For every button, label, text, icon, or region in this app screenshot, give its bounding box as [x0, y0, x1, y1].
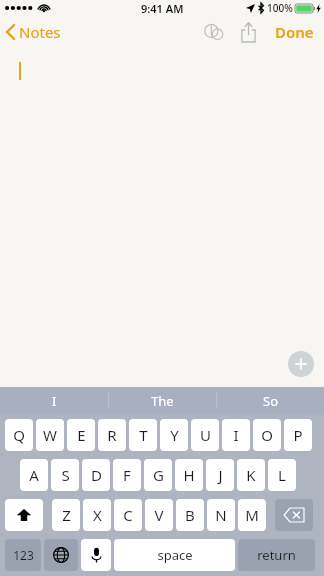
- button[interactable]: Shift: [5, 499, 43, 531]
- staticText: B: [185, 505, 195, 525]
- staticText: D: [91, 465, 102, 485]
- staticText: 123: [13, 547, 34, 563]
- button[interactable]: Share: [231, 16, 265, 48]
- button[interactable]: K: [237, 459, 265, 491]
- button[interactable]: So: [217, 387, 324, 414]
- button[interactable]: Notes: [0, 18, 69, 46]
- button[interactable]: M: [238, 499, 266, 531]
- button[interactable]: 123: [5, 539, 41, 571]
- button[interactable]: H: [175, 459, 203, 491]
- staticText: V: [154, 505, 164, 525]
- button[interactable]: J: [206, 459, 234, 491]
- button[interactable]: R: [98, 419, 126, 451]
- staticText: K: [246, 465, 256, 485]
- button[interactable]: E: [67, 419, 95, 451]
- button[interactable]: X: [83, 499, 111, 531]
- button[interactable]: Add: [288, 351, 314, 377]
- button[interactable]: B: [176, 499, 204, 531]
- button[interactable]: L: [268, 459, 296, 491]
- staticText: Q: [13, 425, 25, 445]
- staticText: 9:41 AM: [141, 1, 184, 16]
- staticText: A: [29, 465, 39, 485]
- staticText: M: [245, 505, 259, 525]
- button[interactable]: V: [145, 499, 173, 531]
- button[interactable]: W: [36, 419, 64, 451]
- button[interactable]: G: [144, 459, 172, 491]
- button[interactable]: S: [51, 459, 79, 491]
- staticText: O: [261, 425, 273, 445]
- button[interactable]: Done: [265, 16, 324, 48]
- staticText: Z: [62, 505, 71, 525]
- staticText: F: [123, 465, 131, 485]
- staticText: L: [278, 465, 286, 485]
- staticText: Notes: [19, 22, 61, 42]
- button[interactable]: Dictate: [81, 539, 111, 571]
- button[interactable]: U: [191, 419, 219, 451]
- button[interactable]: N: [207, 499, 235, 531]
- button[interactable]: Z: [52, 499, 80, 531]
- staticText: The: [151, 392, 174, 410]
- button[interactable]: Q: [5, 419, 33, 451]
- staticText: U: [200, 425, 211, 445]
- staticText: P: [293, 425, 303, 445]
- staticText: T: [139, 425, 148, 445]
- staticText: S: [61, 465, 70, 485]
- staticText: E: [77, 425, 86, 445]
- staticText: X: [93, 505, 102, 525]
- staticText: C: [123, 505, 133, 525]
- staticText: Y: [170, 425, 179, 445]
- staticText: 100%: [267, 1, 293, 15]
- button[interactable]: return: [238, 539, 315, 571]
- button[interactable]: D: [82, 459, 110, 491]
- button[interactable]: O: [253, 419, 281, 451]
- staticText: I: [52, 392, 57, 410]
- button[interactable]: I: [222, 419, 250, 451]
- staticText: return: [257, 546, 296, 564]
- staticText: R: [107, 425, 117, 445]
- button[interactable]: Backspace: [275, 499, 313, 531]
- staticText: G: [153, 465, 164, 485]
- staticText: J: [218, 465, 223, 485]
- staticText: So: [263, 392, 279, 410]
- button[interactable]: F: [113, 459, 141, 491]
- staticText: N: [215, 505, 227, 525]
- button[interactable]: Y: [160, 419, 188, 451]
- staticText: W: [43, 425, 57, 445]
- button[interactable]: space: [114, 539, 235, 571]
- button[interactable]: The: [109, 387, 216, 414]
- staticText: Done: [275, 22, 314, 42]
- staticText: space: [157, 546, 193, 564]
- button[interactable]: P: [284, 419, 312, 451]
- button[interactable]: T: [129, 419, 157, 451]
- staticText: I: [233, 425, 239, 445]
- button[interactable]: Markup: [197, 16, 231, 48]
- button[interactable]: C: [114, 499, 142, 531]
- button[interactable]: A: [20, 459, 48, 491]
- button[interactable]: Next keyboard: [44, 539, 78, 571]
- button[interactable]: I: [0, 387, 108, 414]
- staticText: H: [183, 465, 195, 485]
